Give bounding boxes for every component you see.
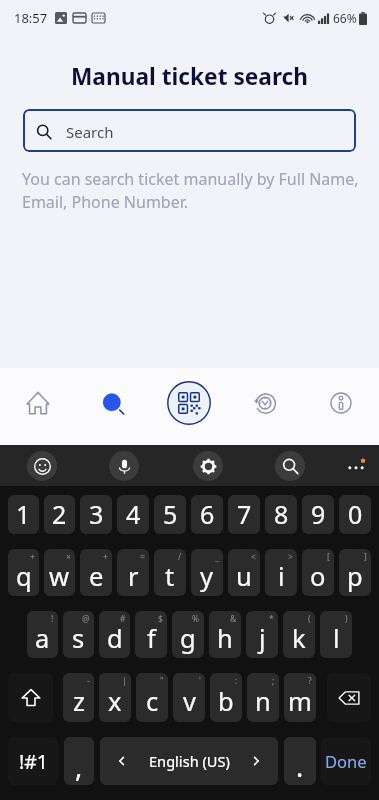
staticText: i (278, 559, 285, 594)
staticText: & (230, 613, 237, 625)
staticText: % (192, 613, 200, 625)
staticText: a (35, 621, 50, 656)
staticText: f (147, 621, 156, 656)
staticText: x (108, 684, 122, 719)
button[interactable]: 1 (8, 495, 39, 534)
button[interactable]: 5 (154, 495, 186, 534)
button[interactable]: 8 (265, 495, 297, 534)
button[interactable]: Emoji (27, 451, 57, 481)
button[interactable]: g (172, 611, 204, 658)
button[interactable]: 4 (117, 495, 149, 534)
button[interactable]: h (209, 611, 241, 658)
staticText: _ (215, 551, 219, 563)
staticText: j (259, 621, 266, 656)
staticText: × (66, 551, 71, 563)
staticText: l (333, 621, 340, 656)
button[interactable]: 9 (302, 495, 334, 534)
button[interactable]: Info (303, 368, 379, 445)
staticText: ) (345, 613, 348, 625)
button[interactable]: a (27, 611, 58, 658)
staticText: d (107, 621, 123, 656)
button[interactable]: j (246, 611, 278, 658)
staticText: 1 (16, 497, 31, 531)
button[interactable]: Voice input (109, 451, 139, 481)
button[interactable]: , (64, 737, 94, 785)
button[interactable]: Done (321, 737, 371, 785)
button[interactable]: m (284, 673, 316, 722)
staticText: " (160, 675, 164, 687)
button[interactable]: Home (0, 368, 75, 445)
staticText: + (103, 551, 108, 563)
staticText: = (140, 551, 145, 563)
staticText: $ (158, 613, 163, 625)
staticText: 7 (237, 497, 252, 531)
button[interactable]: l (320, 611, 352, 658)
button[interactable]: q (8, 549, 39, 596)
staticText: 4 (126, 497, 141, 531)
staticText: ! (51, 613, 54, 625)
button[interactable]: More options (341, 451, 371, 481)
button[interactable]: Backspace (327, 673, 371, 722)
staticText: w (49, 559, 70, 594)
staticText: ] (364, 551, 367, 563)
staticText: - (87, 675, 90, 687)
staticText: / (178, 551, 182, 563)
button[interactable]: Search (23, 109, 356, 152)
staticText: e (89, 559, 104, 594)
button[interactable]: k (283, 611, 315, 658)
button[interactable]: Shift (8, 673, 53, 722)
button[interactable]: z (63, 673, 94, 722)
staticText: p (347, 559, 363, 594)
staticText: ' (199, 675, 201, 687)
button[interactable]: s (63, 611, 94, 658)
staticText: 8 (274, 497, 289, 531)
button[interactable]: !#1 (8, 737, 58, 785)
button[interactable]: 0 (339, 495, 371, 534)
button[interactable]: 3 (80, 495, 112, 534)
staticText: Search (66, 122, 114, 142)
staticText: + (30, 551, 35, 563)
button[interactable]: History (227, 368, 303, 445)
button[interactable]: d (99, 611, 130, 658)
staticText: 6 (200, 497, 215, 531)
staticText: # (120, 613, 126, 625)
button[interactable]: 7 (228, 495, 260, 534)
staticText: Manual ticket search (0, 61, 379, 92)
button[interactable]: Search (75, 368, 151, 445)
staticText: , (75, 748, 83, 785)
button[interactable]: u (228, 549, 260, 596)
button[interactable]: e (80, 549, 112, 596)
button[interactable]: Keyboard settings (193, 451, 223, 481)
staticText: Done (325, 750, 367, 772)
button[interactable]: o (302, 549, 334, 596)
button[interactable]: 6 (191, 495, 223, 534)
staticText: v (183, 684, 196, 719)
button[interactable]: n (247, 673, 279, 722)
staticText: 18:57 (14, 9, 48, 27)
staticText: . (296, 748, 304, 785)
button[interactable]: Scan QR code (151, 368, 227, 445)
button[interactable]: y (191, 549, 223, 596)
button[interactable]: c (136, 673, 168, 722)
button[interactable]: Search (275, 451, 305, 481)
button[interactable]: v (173, 673, 205, 722)
button[interactable]: t (154, 549, 186, 596)
button[interactable]: x (99, 673, 131, 722)
button[interactable]: i (265, 549, 297, 596)
button[interactable]: w (44, 549, 75, 596)
button[interactable]: f (135, 611, 167, 658)
button[interactable]: English (US) (100, 737, 278, 785)
staticText: @ (82, 613, 90, 625)
button[interactable]: p (339, 549, 371, 596)
staticText: [ (327, 551, 330, 563)
button[interactable]: r (117, 549, 149, 596)
staticText: s (72, 621, 85, 656)
button[interactable]: b (210, 673, 242, 722)
staticText: ; (272, 675, 275, 687)
staticText: u (236, 559, 252, 594)
staticText: < (251, 551, 256, 563)
staticText: z (73, 684, 85, 719)
button[interactable]: 2 (44, 495, 75, 534)
staticText: ( (308, 613, 311, 625)
button[interactable]: . (284, 737, 316, 785)
